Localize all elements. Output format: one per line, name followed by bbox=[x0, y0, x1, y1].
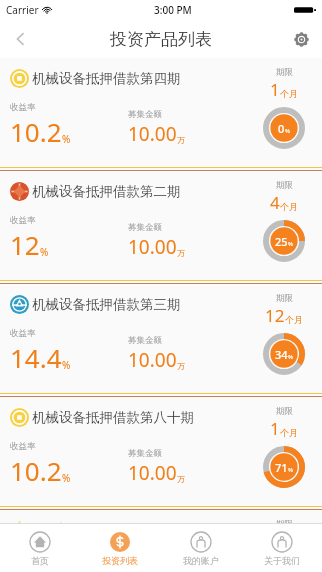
button[interactable]: 机械设备抵押借款第三期 bbox=[0, 284, 322, 393]
staticText: 收益率 bbox=[10, 441, 36, 452]
staticText: 期限 bbox=[276, 519, 293, 523]
staticText: 10.2 bbox=[10, 453, 62, 488]
staticText: 万 bbox=[177, 361, 185, 371]
staticText: 机械设备抵押借款第八十期 bbox=[32, 409, 194, 426]
staticText: 投资列表 bbox=[102, 555, 138, 566]
staticText: % bbox=[288, 466, 293, 474]
staticText: 期限 bbox=[276, 406, 293, 417]
button[interactable]: 我的账户 bbox=[160, 524, 241, 572]
staticText: % bbox=[62, 358, 71, 372]
staticText: 0 bbox=[278, 121, 285, 136]
staticText: 募集金额 bbox=[128, 335, 162, 346]
staticText: 收益率 bbox=[10, 102, 36, 113]
staticText: 投资产品列表 bbox=[110, 29, 212, 50]
staticText: % bbox=[288, 353, 293, 361]
staticText: 期限 bbox=[276, 67, 293, 78]
staticText: 10.2 bbox=[10, 114, 62, 149]
staticText: 个月 bbox=[280, 88, 298, 99]
button[interactable]: 首页 bbox=[0, 524, 80, 572]
staticText: 募集金额 bbox=[128, 109, 162, 120]
staticText: 机械设备抵押借款第二期 bbox=[32, 183, 181, 200]
staticText: 期限 bbox=[276, 293, 293, 304]
staticText: 34 bbox=[275, 347, 288, 362]
staticText: 机械设备抵押借款第四期 bbox=[32, 70, 181, 87]
staticText: 10.00 bbox=[128, 347, 177, 373]
staticText: 12 bbox=[265, 304, 285, 327]
button[interactable]: Settings bbox=[280, 20, 322, 58]
staticText: 10.00 bbox=[128, 121, 177, 147]
staticText: 1 bbox=[270, 417, 280, 440]
button[interactable]: 机械设备抵押借款第四期 bbox=[0, 58, 322, 167]
staticText: Carrier bbox=[6, 3, 39, 17]
staticText: % bbox=[285, 127, 290, 135]
staticText: 首页 bbox=[31, 555, 49, 566]
button[interactable]: 机械设备抵押借款第一期 bbox=[0, 510, 322, 523]
staticText: 14.4 bbox=[10, 340, 62, 375]
staticText: 4 bbox=[270, 191, 280, 214]
staticText: 个月 bbox=[285, 314, 303, 325]
staticText: % bbox=[62, 132, 71, 146]
staticText: % bbox=[288, 240, 293, 248]
staticText: 10.00 bbox=[128, 460, 177, 486]
staticText: % bbox=[40, 245, 49, 259]
button[interactable]: 投资列表 bbox=[80, 524, 160, 572]
staticText: 1 bbox=[270, 78, 280, 101]
staticText: 我的账户 bbox=[183, 555, 219, 566]
staticText: 万 bbox=[177, 135, 185, 145]
button[interactable]: 机械设备抵押借款第二期 bbox=[0, 171, 322, 280]
staticText: 3:00 PM bbox=[154, 3, 192, 17]
staticText: 募集金额 bbox=[128, 448, 162, 459]
staticText: 25 bbox=[275, 234, 288, 249]
button[interactable]: 关于我们 bbox=[241, 524, 322, 572]
staticText: 募集金额 bbox=[128, 222, 162, 233]
staticText: 收益率 bbox=[10, 215, 36, 226]
staticText: 万 bbox=[177, 248, 185, 258]
staticText: 个月 bbox=[280, 201, 298, 212]
staticText: 万 bbox=[177, 474, 185, 484]
button[interactable]: Back bbox=[0, 20, 42, 58]
staticText: 机械设备抵押借款第三期 bbox=[32, 296, 181, 313]
staticText: 10.00 bbox=[128, 234, 177, 260]
staticText: 12 bbox=[10, 227, 40, 262]
staticText: 关于我们 bbox=[264, 555, 300, 566]
staticText: 个月 bbox=[280, 427, 298, 438]
staticText: % bbox=[62, 471, 71, 485]
button[interactable]: 机械设备抵押借款第八十期 bbox=[0, 397, 322, 506]
staticText: 71 bbox=[275, 460, 288, 475]
staticText: 收益率 bbox=[10, 328, 36, 339]
staticText: 期限 bbox=[276, 180, 293, 191]
